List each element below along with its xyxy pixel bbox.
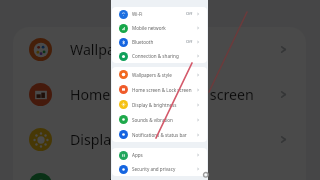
staticText: Home screen & Lock screen	[70, 85, 254, 104]
staticText: Mobile network	[132, 25, 166, 31]
staticText: Sounds & vibration	[70, 175, 197, 180]
button[interactable]: Sounds & vibration	[112, 112, 207, 127]
button[interactable]: Display & brightness	[13, 117, 306, 162]
button[interactable]: Apps	[112, 148, 207, 162]
staticText: Wi-Fi	[132, 11, 143, 17]
button[interactable]: Wallpapers & style	[13, 27, 306, 72]
button[interactable]: Display & brightness	[112, 97, 207, 112]
staticText: Off	[186, 11, 193, 17]
button[interactable]: Home screen & Lock screen	[112, 82, 207, 97]
staticText: Home screen & Lock screen	[132, 87, 192, 93]
button[interactable]: Connection & sharing	[112, 49, 207, 63]
button[interactable]: Security and privacy	[112, 162, 207, 176]
button[interactable]: Notifications & status bar	[112, 127, 207, 142]
button[interactable]: Home screen & Lock screen	[13, 72, 306, 117]
button[interactable]: Mobile network	[112, 21, 207, 35]
staticText: Apps	[132, 152, 143, 158]
staticText: Connection & sharing	[132, 53, 179, 59]
staticText: Security and privacy	[132, 166, 176, 172]
staticText: Display & brightness	[70, 130, 208, 149]
staticText: Bluetooth	[132, 39, 154, 45]
button[interactable]: Sounds & vibration	[13, 162, 306, 180]
button[interactable]: Wallpapers & style	[112, 67, 207, 82]
staticText: Wallpapers & style	[70, 40, 193, 59]
button[interactable]: Bluetooth	[112, 35, 207, 49]
staticText: Display & brightness	[132, 102, 177, 108]
staticText: Notifications & status bar	[132, 132, 187, 138]
staticText: Sounds & vibration	[132, 117, 173, 123]
button[interactable]: Wi-Fi	[112, 7, 207, 21]
staticText: Wallpapers & style	[132, 72, 172, 78]
staticText: Off	[186, 39, 193, 45]
